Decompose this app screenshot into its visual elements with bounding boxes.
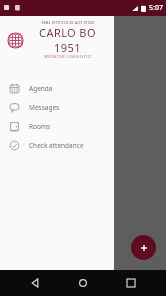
button[interactable]: Home (70, 270, 96, 296)
staticText: Agenda (29, 84, 53, 93)
button[interactable]: Back (22, 270, 48, 296)
button[interactable]: Messages (0, 98, 114, 117)
staticText: Messages (29, 103, 60, 112)
staticText: CARLO BO 1951 (27, 25, 108, 55)
button[interactable]: Recents (118, 270, 144, 296)
staticText: Rooms (29, 122, 51, 131)
button[interactable]: Rooms (0, 117, 114, 136)
button[interactable]: Check attendance (0, 136, 114, 155)
button[interactable]: Agenda (0, 79, 114, 98)
staticText: MEDIATORI LINGUISTICI (44, 55, 92, 59)
staticText: Check attendance (29, 141, 84, 150)
button[interactable]: Add (131, 235, 156, 260)
staticText: SSML ISTITUTO DI ALTI STUDI (41, 21, 95, 25)
staticText: 5:07 (149, 3, 163, 13)
